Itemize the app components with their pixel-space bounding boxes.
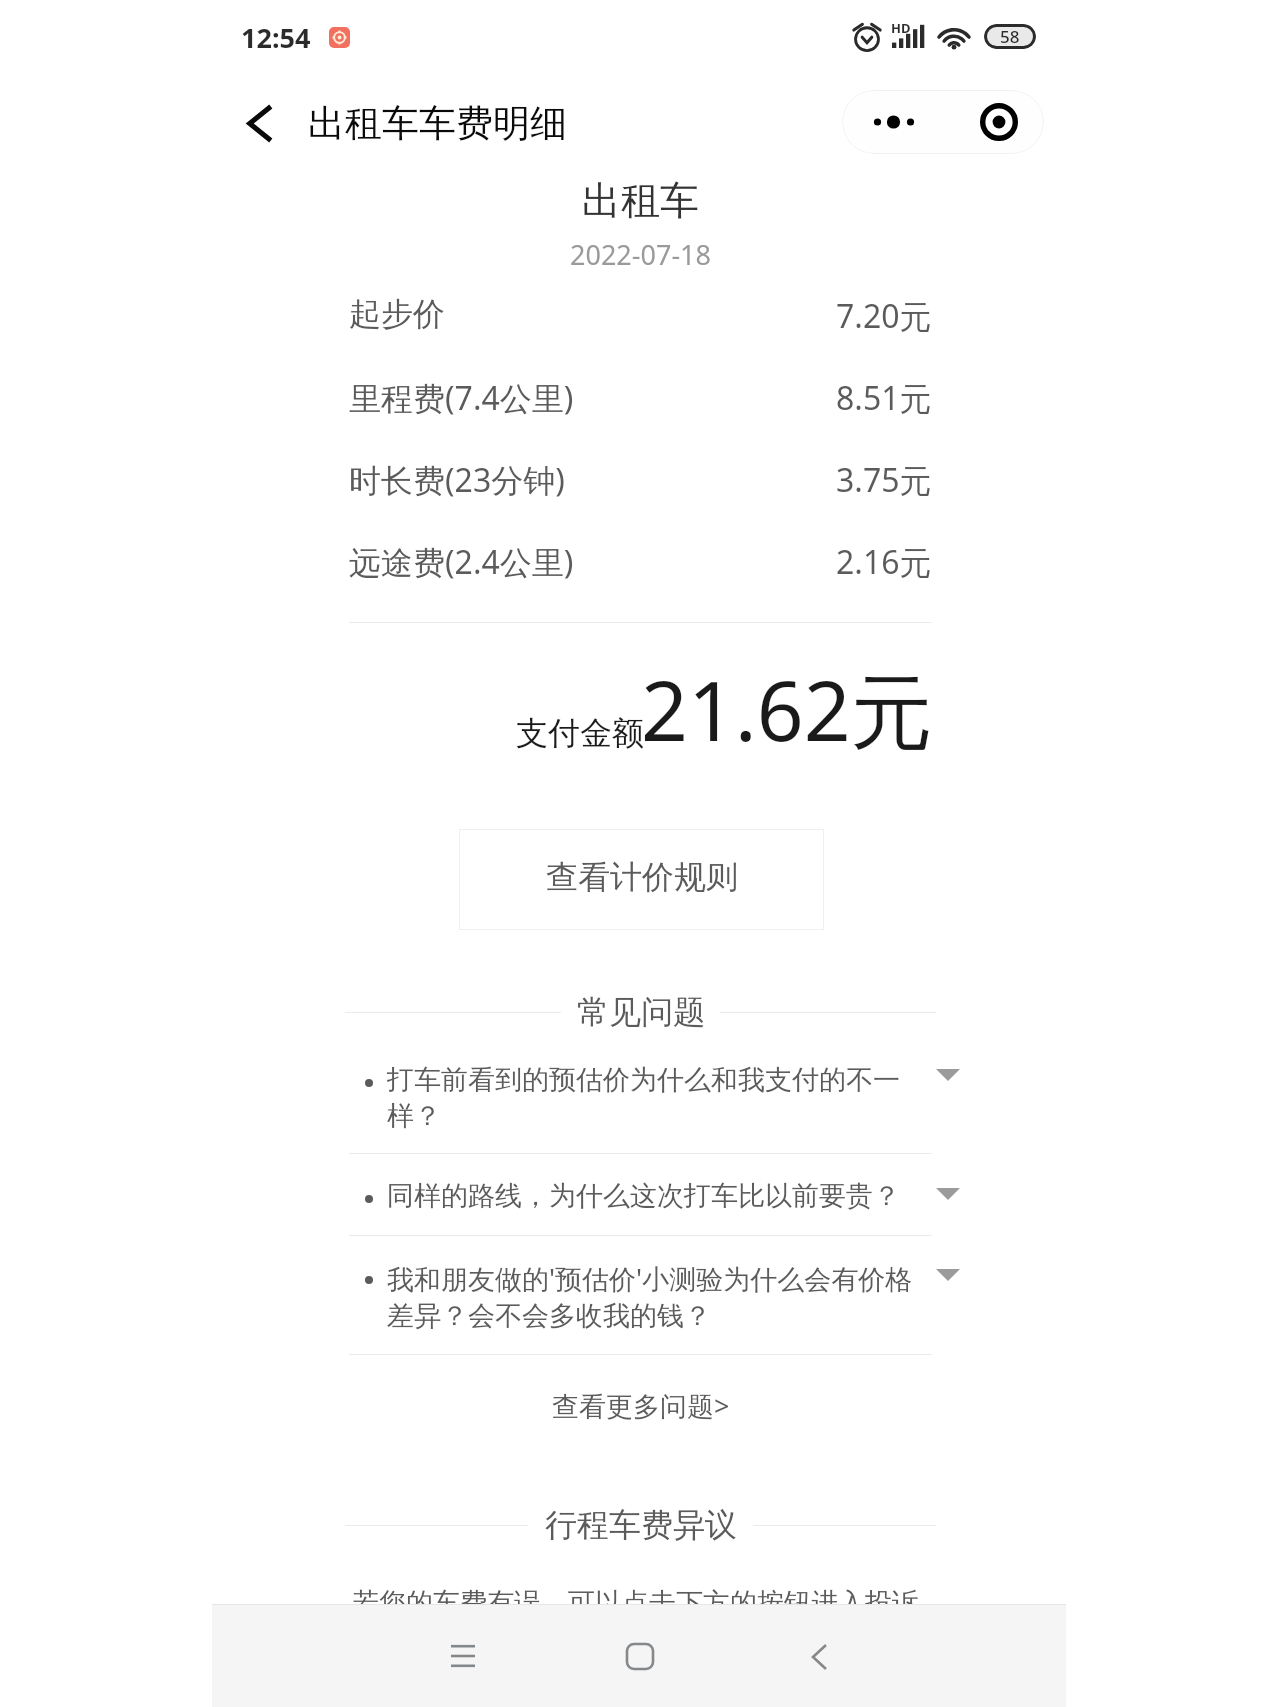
staticText: 2.16元 <box>836 540 932 580</box>
staticText: HD <box>891 19 911 37</box>
button[interactable]: 我和朋友做的'预估价'小测验为什么会有价格差异？会不会多收我的钱？ <box>349 1244 960 1360</box>
staticText: 7.20元 <box>836 294 932 334</box>
staticText: 里程费(7.4公里) <box>349 376 574 416</box>
staticText: 查看计价规则 <box>546 857 738 897</box>
staticText: 我和朋友做的'预估价'小测验为什么会有价格差异？会不会多收我的钱？ <box>387 1260 922 1333</box>
staticText: 若您的车费有误，可以点击下方的按钮进入投诉 <box>352 1586 919 1620</box>
staticText: 12:54 <box>241 19 311 56</box>
button[interactable]: Home <box>569 1606 711 1707</box>
button[interactable]: More <box>842 90 943 154</box>
staticText: 远途费(2.4公里) <box>349 540 574 580</box>
staticText: 出租车车费明细 <box>308 100 567 147</box>
button[interactable]: Back <box>748 1606 890 1707</box>
staticText: 同样的路线，为什么这次打车比以前要贵？ <box>387 1179 922 1213</box>
button[interactable]: 查看更多问题> <box>349 1355 932 1455</box>
staticText: 21.62元 <box>641 653 933 765</box>
staticText: 行程车费异议 <box>545 1505 737 1545</box>
staticText: 打车前看到的预估价为什么和我支付的不一样？ <box>387 1063 922 1133</box>
staticText: 查看更多问题> <box>552 1387 730 1424</box>
staticText: 时长费(23分钟) <box>349 458 565 498</box>
staticText: 8.51元 <box>836 376 932 416</box>
button[interactable]: Close mini program <box>943 90 1044 154</box>
staticText: 58 <box>1000 25 1020 48</box>
staticText: 出租车 <box>349 176 932 225</box>
staticText: 2022-07-18 <box>349 236 932 273</box>
button[interactable]: 打车前看到的预估价为什么和我支付的不一样？ <box>349 1047 960 1163</box>
button[interactable]: 查看计价规则 <box>459 829 824 930</box>
staticText: 常见问题 <box>577 992 705 1032</box>
staticText: 3.75元 <box>836 458 932 498</box>
button[interactable]: 同样的路线，为什么这次打车比以前要贵？ <box>349 1163 960 1243</box>
button[interactable]: Back <box>233 96 287 150</box>
staticText: 支付金额 <box>516 713 644 753</box>
button[interactable]: Recent apps <box>392 1606 534 1707</box>
staticText: 起步价 <box>349 294 445 334</box>
